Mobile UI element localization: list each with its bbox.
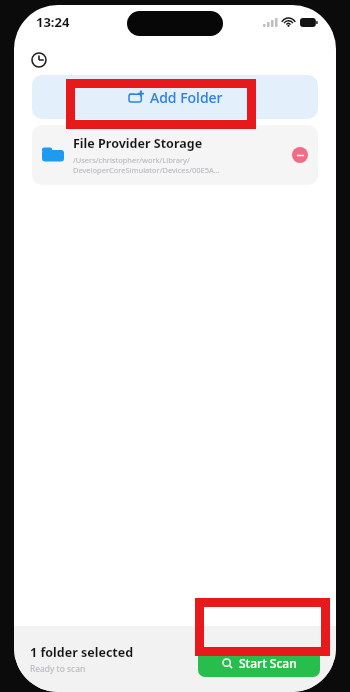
staticText: 1 folder selected — [30, 644, 134, 661]
button[interactable]: File Provider Storage — [32, 125, 318, 185]
button[interactable]: History — [28, 49, 50, 71]
staticText: Start Scan — [239, 655, 297, 671]
button[interactable]: Remove folder — [292, 147, 308, 163]
button[interactable]: Start Scan — [198, 649, 320, 677]
staticText: File Provider Storage — [73, 135, 203, 152]
staticText: Add Folder — [150, 88, 223, 107]
button[interactable]: Add Folder — [32, 75, 318, 119]
staticText: DeveloperCoreSimulator/Devices/00E5A… — [73, 165, 220, 175]
staticText: 13:24 — [36, 13, 70, 31]
staticText: /Users/christopher/work/Library/ — [73, 155, 190, 165]
staticText: Ready to scan — [30, 663, 86, 675]
